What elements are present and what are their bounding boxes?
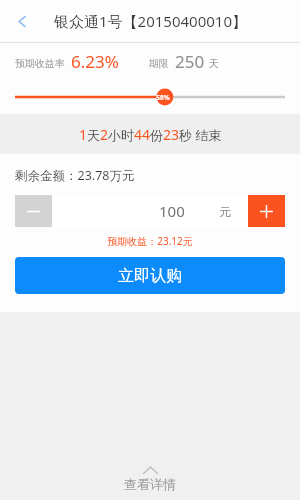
staticText: 250 bbox=[175, 50, 205, 73]
staticText: 立即认购 bbox=[118, 266, 182, 286]
button[interactable]: Back bbox=[0, 0, 44, 42]
staticText: 查看详情 bbox=[124, 476, 176, 492]
staticText: 1天2小时44份23秒 结束 bbox=[79, 125, 222, 144]
staticText: 预期收益率 bbox=[15, 57, 65, 70]
staticText: 6.23% bbox=[71, 50, 119, 73]
staticText: 期限 bbox=[149, 57, 169, 70]
button[interactable]: 立即认购 bbox=[15, 257, 285, 294]
button[interactable]: 查看详情 bbox=[0, 458, 300, 500]
staticText: 剩余金额：23.78万元 bbox=[15, 167, 135, 184]
staticText: 58% bbox=[152, 93, 174, 102]
staticText: 元 bbox=[219, 204, 231, 219]
button[interactable]: Increase amount bbox=[248, 195, 285, 227]
staticText: 天 bbox=[209, 57, 219, 70]
staticText: 预期收益：23.12元 bbox=[0, 234, 300, 248]
staticText: 100 bbox=[159, 201, 185, 221]
staticText: 银众通1号【20150400010】 bbox=[54, 11, 247, 31]
button[interactable]: Decrease amount bbox=[15, 195, 52, 227]
